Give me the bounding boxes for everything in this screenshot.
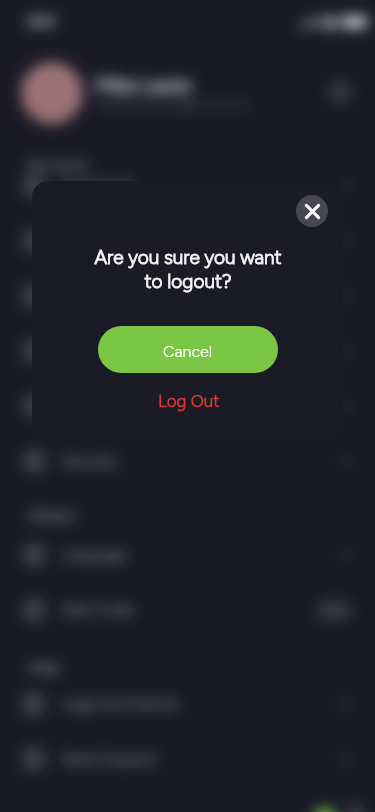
button[interactable]: My Wishlist <box>23 379 352 433</box>
staticText: Language <box>62 546 127 564</box>
staticText: Notification <box>62 232 142 250</box>
staticText: Help <box>27 658 61 677</box>
staticText: Legal and Policies <box>62 695 180 713</box>
button[interactable]: Need Support <box>23 732 352 786</box>
staticText: Address <box>62 342 117 360</box>
staticText: Log Out <box>158 391 220 411</box>
button[interactable]: Address <box>23 324 352 378</box>
button[interactable]: Edit Profile <box>23 159 352 213</box>
staticText: Dark mode <box>62 601 134 619</box>
button[interactable]: Dark mode <box>23 583 352 637</box>
staticText: Security <box>62 452 118 470</box>
button[interactable]: Cancel <box>98 326 278 373</box>
button[interactable]: Notification <box>23 214 352 268</box>
staticText: Account <box>27 155 88 174</box>
button[interactable]: Legal and Policies <box>23 677 352 731</box>
staticText: Are you sure you want to logout? <box>94 246 282 293</box>
button[interactable]: Security <box>23 434 352 488</box>
staticText: Others <box>27 506 76 525</box>
staticText: Mike Lewis <box>95 73 192 97</box>
button[interactable]: Payment <box>23 269 352 323</box>
staticText: mikelewis1234@gmail.com <box>95 97 250 113</box>
button[interactable]: Language <box>23 528 352 582</box>
staticText: Edit Profile <box>62 177 135 195</box>
button[interactable]: Log Out <box>140 388 238 414</box>
staticText: 9:41 <box>28 13 56 31</box>
staticText: Need Support <box>62 750 157 768</box>
staticText: Cancel <box>163 342 213 361</box>
button[interactable]: Edit profile <box>330 82 350 102</box>
button[interactable]: Close dialog <box>296 195 328 227</box>
